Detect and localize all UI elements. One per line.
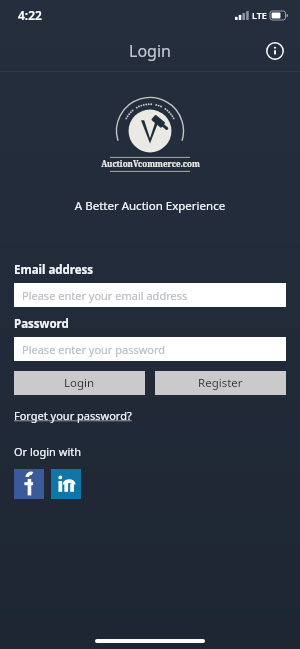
button[interactable]: Login: [14, 371, 145, 395]
button[interactable]: Sign in with LinkedIn: [51, 469, 81, 499]
staticText: Email address: [14, 262, 94, 278]
button[interactable]: Please enter your email address: [14, 283, 286, 307]
staticText: AuctionVcommerce.com: [101, 158, 200, 169]
button[interactable]: Forget your password?: [14, 408, 132, 423]
staticText: 4:22: [18, 7, 42, 23]
staticText: Please enter your email address: [22, 288, 188, 303]
staticText: Login: [129, 40, 171, 62]
staticText: Forget your password?: [14, 408, 132, 423]
staticText: Password: [14, 316, 69, 332]
button[interactable]: Sign in with Facebook: [14, 469, 44, 499]
staticText: Please enter your password: [22, 342, 166, 357]
button[interactable]: Please enter your password: [14, 337, 286, 361]
staticText: Login: [64, 375, 95, 391]
staticText: Register: [198, 375, 243, 391]
staticText: A Better Auction Experience: [0, 198, 300, 214]
button[interactable]: Information: [260, 36, 290, 66]
staticText: Or login with: [14, 444, 82, 459]
staticText: LTE: [252, 9, 267, 21]
button[interactable]: Register: [155, 371, 286, 395]
